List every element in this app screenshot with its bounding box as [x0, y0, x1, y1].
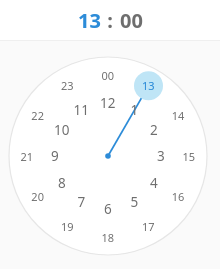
- button[interactable]: 00: [119, 7, 144, 34]
- button[interactable]: Clock face, select hour: [0, 41, 220, 269]
- staticText: :: [102, 7, 119, 34]
- button[interactable]: 13: [77, 7, 102, 34]
- staticText: 00: [120, 7, 143, 34]
- staticText: 13: [78, 7, 101, 34]
